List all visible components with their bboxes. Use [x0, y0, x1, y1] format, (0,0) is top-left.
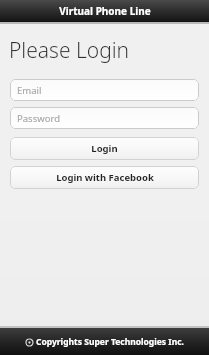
staticText: Password — [17, 112, 60, 125]
button[interactable]: Password — [10, 107, 199, 129]
staticText: Copyrights Super Technologies Inc. — [36, 336, 184, 348]
staticText: Login — [91, 142, 118, 155]
staticText: Virtual Phone Line — [59, 4, 151, 18]
button[interactable]: Login with Facebook — [10, 166, 199, 189]
button[interactable]: Email — [10, 79, 199, 101]
staticText: Email — [17, 84, 42, 97]
button[interactable]: Login — [10, 137, 199, 160]
staticText: Please Login — [9, 36, 130, 65]
staticText: Login with Facebook — [56, 171, 154, 184]
